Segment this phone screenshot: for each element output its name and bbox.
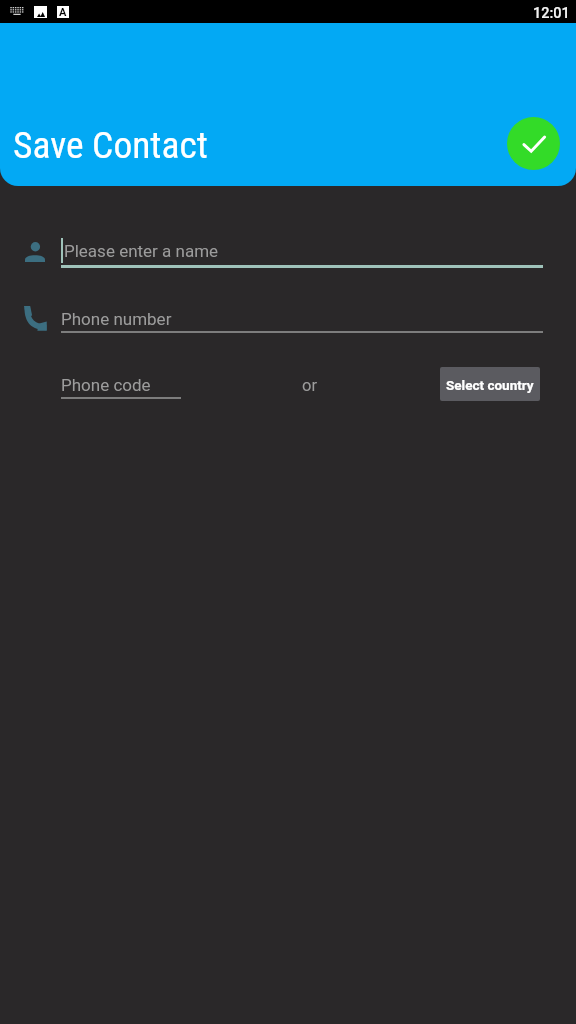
- button[interactable]: Phone number: [61, 303, 543, 335]
- button[interactable]: Phone code: [61, 369, 181, 401]
- staticText: A: [59, 6, 67, 18]
- staticText: Phone code: [61, 375, 151, 395]
- staticText: Save Contact: [13, 123, 208, 167]
- button[interactable]: Select country: [440, 367, 540, 401]
- button[interactable]: Please enter a name: [61, 236, 543, 270]
- staticText: Please enter a name: [64, 241, 219, 261]
- button[interactable]: Save contact: [507, 117, 560, 170]
- staticText: Select country: [446, 377, 534, 393]
- staticText: Phone number: [61, 309, 172, 329]
- staticText: 12:01: [533, 5, 570, 22]
- staticText: or: [302, 376, 318, 395]
